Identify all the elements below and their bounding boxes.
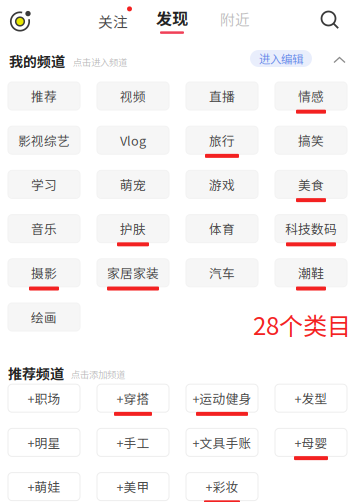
staticText: +萌娃 [27,477,60,496]
button[interactable]: 家居家装 [97,259,169,303]
button[interactable]: 绘画 [8,303,80,347]
button[interactable]: Collapse [333,56,347,65]
staticText: 科技数码 [285,219,337,238]
button[interactable]: 汽车 [186,259,258,303]
staticText: 家居家装 [107,264,159,282]
button[interactable]: 关注 [98,7,136,31]
staticText: +穿搭 [116,389,149,407]
staticText: 点击添加频道 [71,367,125,381]
staticText: 影视综艺 [18,131,70,149]
button[interactable]: 搞笑 [275,126,347,170]
staticText: 我的频道 [9,51,65,71]
staticText: +母婴 [294,433,327,451]
staticText: +职场 [27,389,60,407]
button[interactable]: 护肤 [97,215,169,259]
staticText: Vlog [120,131,146,149]
button[interactable]: +彩妆 [186,473,258,502]
staticText: 情感 [298,87,324,105]
button[interactable]: +文具手账 [186,428,258,473]
staticText: 点击进入频道 [73,55,127,69]
staticText: 摄影 [31,264,57,282]
button[interactable]: 科技数码 [275,215,347,259]
button[interactable]: 旅行 [186,126,258,170]
staticText: 推荐频道 [8,363,64,383]
button[interactable]: 影视综艺 [8,126,80,170]
staticText: 关注 [98,10,128,32]
staticText: 进入编辑 [259,50,303,67]
button[interactable]: Vlog [97,126,169,170]
button[interactable]: 游戏 [186,170,258,215]
staticText: +发型 [294,389,327,407]
staticText: +运动健身 [192,389,251,407]
button[interactable]: 附近 [218,7,252,31]
button[interactable]: +运动健身 [186,384,258,428]
staticText: +手工 [116,433,149,451]
staticText: 音乐 [31,219,57,238]
staticText: +美甲 [116,477,149,496]
button[interactable]: 推荐 [8,82,80,126]
button[interactable]: +发型 [275,384,347,428]
staticText: 汽车 [209,264,235,282]
button[interactable]: +萌娃 [8,473,80,502]
button[interactable]: 学习 [8,170,80,215]
button[interactable]: 音乐 [8,215,80,259]
staticText: 护肤 [120,219,146,238]
button[interactable]: 进入编辑 [250,50,312,67]
button[interactable]: 发现 [156,7,188,33]
staticText: 搞笑 [298,131,324,149]
staticText: 萌宠 [120,175,146,193]
staticText: 28个类目 [253,307,351,342]
staticText: 绘画 [31,308,57,326]
staticText: 美食 [298,175,324,193]
button[interactable]: Search [319,9,341,31]
button[interactable]: +手工 [97,428,169,473]
staticText: 发现 [156,6,188,29]
button[interactable]: +职场 [8,384,80,428]
staticText: +文具手账 [192,433,251,451]
staticText: 推荐 [31,87,57,105]
button[interactable]: 体育 [186,215,258,259]
button[interactable]: 萌宠 [97,170,169,215]
button[interactable]: +穿搭 [97,384,169,428]
button[interactable]: 情感 [275,82,347,126]
button[interactable]: 潮鞋 [275,259,347,303]
staticText: 游戏 [209,175,235,193]
staticText: 潮鞋 [298,264,324,282]
button[interactable]: 摄影 [8,259,80,303]
button[interactable]: 直播 [186,82,258,126]
staticText: 学习 [31,175,57,193]
button[interactable]: 视频 [97,82,169,126]
button[interactable]: 美食 [275,170,347,215]
staticText: 附近 [220,8,250,30]
staticText: 旅行 [209,131,235,149]
staticText: +明星 [27,433,60,451]
staticText: 视频 [120,87,146,105]
button[interactable]: Home [8,7,34,33]
staticText: 直播 [209,87,235,105]
button[interactable]: +美甲 [97,473,169,502]
staticText: +彩妆 [205,477,238,496]
button[interactable]: +母婴 [275,428,347,473]
staticText: 体育 [209,219,235,238]
button[interactable]: +明星 [8,428,80,473]
